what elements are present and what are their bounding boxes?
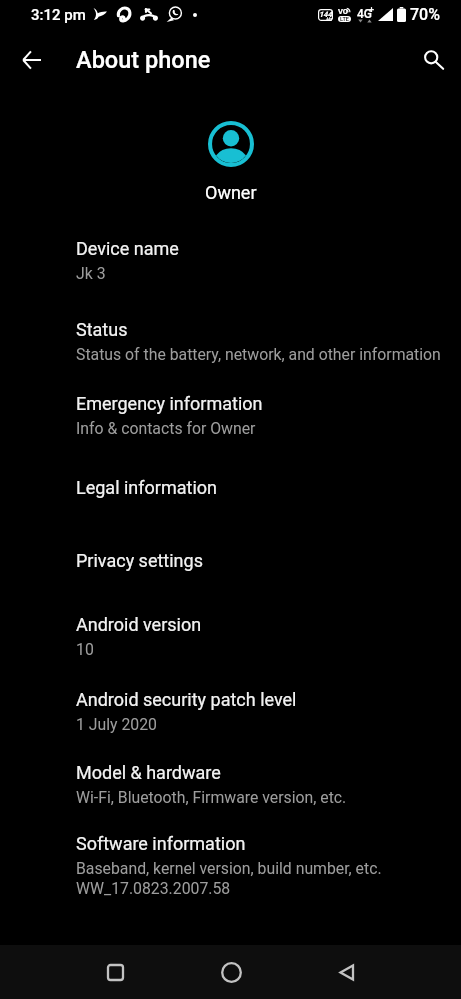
- staticText: Status: [76, 319, 128, 340]
- staticText: Device name: [76, 238, 179, 259]
- staticText: 4G: [357, 7, 372, 21]
- button[interactable]: Privacy settings: [0, 536, 461, 600]
- staticText: 10: [76, 640, 94, 659]
- staticText: Legal information: [76, 477, 217, 498]
- button[interactable]: Search: [405, 32, 461, 88]
- button[interactable]: Home: [203, 945, 259, 999]
- staticText: Software information: [76, 833, 246, 854]
- staticText: Baseband, kernel version, build number, …: [76, 859, 382, 878]
- staticText: Model & hardware: [76, 762, 221, 783]
- button[interactable]: Recent apps: [87, 945, 143, 999]
- staticText: 3:12 pm: [31, 6, 86, 24]
- button[interactable]: Back: [3, 32, 59, 88]
- button[interactable]: Android version: [0, 600, 461, 675]
- staticText: Jk 3: [76, 264, 106, 283]
- button[interactable]: Model & hardware: [0, 748, 461, 819]
- staticText: Privacy settings: [76, 550, 203, 571]
- staticText: 70%: [410, 5, 440, 24]
- staticText: Status of the battery, network, and othe…: [76, 345, 441, 364]
- button[interactable]: Emergency information: [0, 379, 461, 463]
- staticText: 1 July 2020: [76, 715, 157, 734]
- button[interactable]: Legal information: [0, 463, 461, 536]
- staticText: VO: [338, 7, 349, 16]
- staticText: Emergency information: [76, 393, 263, 414]
- staticText: Hz: [326, 16, 333, 22]
- staticText: 144: [319, 10, 332, 19]
- staticText: Info & contacts for Owner: [76, 419, 256, 438]
- staticText: +: [369, 5, 375, 16]
- button[interactable]: Software information: [0, 819, 461, 899]
- staticText: Wi-Fi, Bluetooth, Firmware version, etc.: [76, 788, 347, 807]
- staticText: WW_17.0823.2007.58: [76, 879, 231, 898]
- staticText: Owner: [205, 182, 257, 203]
- staticText: Android version: [76, 614, 202, 635]
- staticText: Android security patch level: [76, 689, 297, 710]
- staticText: LTE: [340, 16, 349, 22]
- button[interactable]: Android security patch level: [0, 675, 461, 748]
- button[interactable]: Back: [318, 945, 374, 999]
- staticText: About phone: [76, 46, 211, 74]
- button[interactable]: Status: [0, 305, 461, 379]
- button[interactable]: Device name: [0, 224, 461, 305]
